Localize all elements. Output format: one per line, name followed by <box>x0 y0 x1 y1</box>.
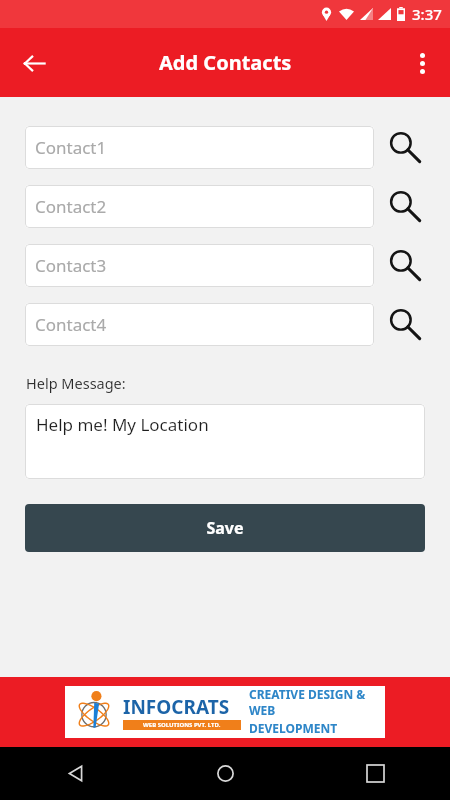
staticText: Contact2 <box>35 195 107 218</box>
staticText: DEVELOPMENT STUDIO <box>249 720 385 738</box>
button[interactable]: Contact2 <box>25 185 374 228</box>
staticText: Help Message: <box>26 373 126 393</box>
staticText: 3:37 <box>412 4 442 24</box>
staticText: INFOCRATS <box>123 694 230 720</box>
button[interactable]: Back <box>10 39 58 87</box>
button[interactable]: Search contact <box>374 126 436 169</box>
button[interactable]: Advertisement <box>0 677 450 747</box>
staticText: Contact1 <box>35 136 107 159</box>
staticText: CREATIVE DESIGN & WEB <box>249 686 385 718</box>
button[interactable]: Search contact <box>374 303 436 346</box>
button[interactable]: Contact3 <box>25 244 374 287</box>
staticText: Help me! My Location <box>36 413 209 436</box>
button[interactable]: Contact4 <box>25 303 374 346</box>
button[interactable]: Save <box>25 504 425 552</box>
staticText: WEB SOLUTIONS PVT. LTD. <box>143 721 221 729</box>
button[interactable]: Home <box>150 747 300 800</box>
staticText: Contact3 <box>35 254 107 277</box>
staticText: Contact4 <box>35 313 107 336</box>
button[interactable]: Help me! My Location <box>25 404 425 479</box>
button[interactable]: Contact1 <box>25 126 374 169</box>
button[interactable]: Back <box>0 747 150 800</box>
button[interactable]: Search contact <box>374 244 436 287</box>
button[interactable]: More options <box>400 41 444 85</box>
button[interactable]: Recent apps <box>300 747 450 800</box>
button[interactable]: Search contact <box>374 185 436 228</box>
staticText: Save <box>206 517 244 539</box>
staticText: Add Contacts <box>159 49 292 76</box>
